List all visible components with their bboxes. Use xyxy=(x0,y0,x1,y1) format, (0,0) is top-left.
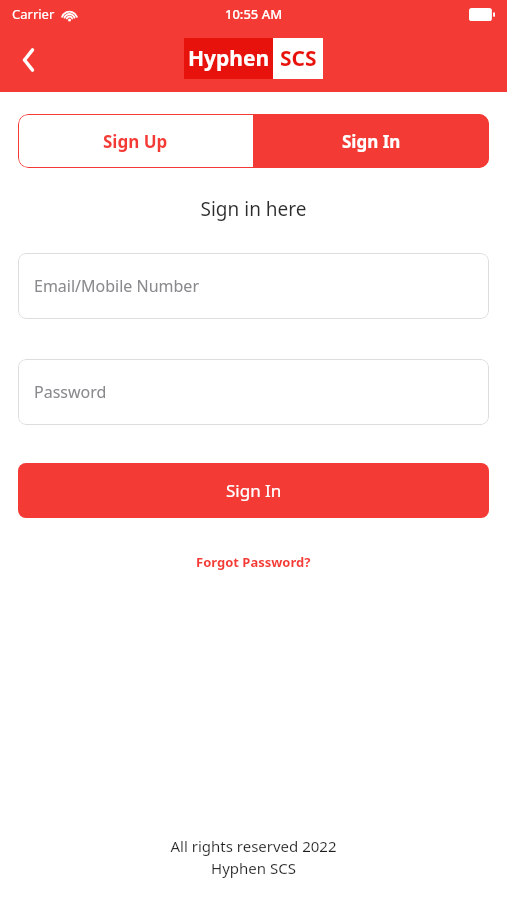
button[interactable]: Email/Mobile Number xyxy=(18,253,489,319)
staticText: Sign Up xyxy=(103,130,168,153)
button[interactable]: Forgot Password? xyxy=(190,550,317,574)
button[interactable]: Password xyxy=(18,359,489,425)
staticText: Email/Mobile Number xyxy=(34,275,199,297)
staticText: Password xyxy=(34,381,107,403)
staticText: Sign in here xyxy=(18,196,489,222)
staticText: Sign In xyxy=(342,130,401,153)
staticText: Hyphen SCS xyxy=(211,858,296,878)
button[interactable]: Sign Up xyxy=(18,114,253,168)
staticText: Sign In xyxy=(226,479,282,502)
staticText: Carrier xyxy=(12,5,55,23)
button[interactable]: Sign In xyxy=(253,114,489,168)
button[interactable]: Sign In xyxy=(18,463,489,518)
staticText: All rights reserved 2022 xyxy=(170,836,337,856)
staticText: 10:55 AM xyxy=(225,5,283,23)
staticText: SCS xyxy=(280,44,317,73)
staticText: Hyphen xyxy=(188,44,270,73)
staticText: Forgot Password? xyxy=(196,553,311,571)
button[interactable]: Back xyxy=(8,39,50,81)
